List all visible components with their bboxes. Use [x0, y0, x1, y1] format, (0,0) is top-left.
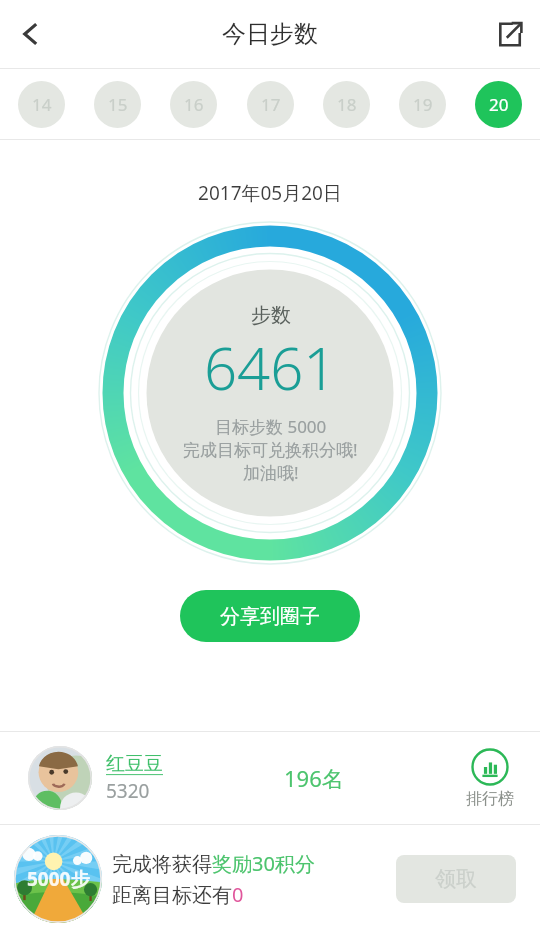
staticText: 196名 — [284, 763, 344, 793]
button[interactable]: 20 — [475, 81, 522, 128]
staticText: 目标步数 5000 — [215, 415, 327, 438]
button[interactable]: Share — [478, 3, 540, 65]
staticText: 18 — [337, 93, 357, 116]
staticText: 6461 — [204, 328, 337, 407]
staticText: 5320 — [106, 778, 150, 804]
staticText: 完成将获得奖励30积分 — [112, 850, 315, 877]
button[interactable]: 14 — [18, 81, 65, 128]
staticText: 16 — [184, 93, 204, 116]
staticText: 红豆豆 — [106, 752, 163, 776]
button[interactable]: 15 — [94, 81, 141, 128]
staticText: 排行榜 — [466, 789, 514, 809]
staticText: 今日步数 — [222, 19, 318, 49]
button[interactable]: 16 — [170, 81, 217, 128]
button[interactable]: Back — [0, 3, 62, 65]
button[interactable]: 18 — [323, 81, 370, 128]
staticText: 领取 — [435, 866, 477, 892]
button[interactable]: 领取 — [396, 855, 516, 903]
staticText: 5000步 — [27, 866, 90, 892]
staticText: 20 — [489, 93, 509, 116]
button[interactable]: 19 — [399, 81, 446, 128]
staticText: 15 — [108, 93, 128, 116]
button[interactable]: 红豆豆 — [0, 732, 540, 824]
button[interactable]: 17 — [247, 81, 294, 128]
staticText: 2017年05月20日 — [0, 180, 540, 206]
staticText: 距离目标还有0 — [112, 881, 244, 908]
staticText: 步数 — [251, 303, 291, 328]
staticText: 完成目标可兑换积分哦! — [183, 438, 358, 461]
staticText: 17 — [261, 93, 281, 116]
button[interactable]: 分享到圈子 — [180, 590, 360, 642]
button[interactable]: 排行榜 — [466, 748, 514, 809]
staticText: 19 — [413, 93, 433, 116]
staticText: 分享到圈子 — [220, 604, 320, 629]
staticText: 14 — [32, 93, 52, 116]
staticText: 加油哦! — [243, 461, 299, 484]
